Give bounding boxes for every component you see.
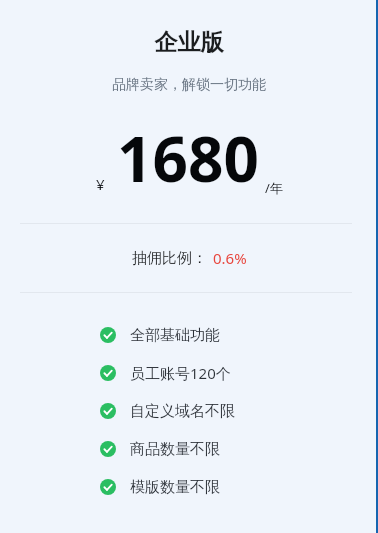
staticText: 商品数量不限: [130, 440, 220, 459]
button[interactable]: 自定义域名不限: [0, 392, 378, 430]
staticText: /年: [265, 179, 283, 197]
button[interactable]: 抽佣比例：: [0, 224, 378, 292]
button[interactable]: 模版数量不限: [0, 468, 378, 506]
staticText: 自定义域名不限: [130, 402, 235, 421]
staticText: ¥: [96, 174, 105, 194]
staticText: 员工账号120个: [130, 363, 231, 383]
staticText: 模版数量不限: [130, 478, 220, 497]
staticText: 抽佣比例：: [132, 249, 207, 268]
staticText: 全部基础功能: [130, 326, 220, 345]
button[interactable]: 全部基础功能: [0, 316, 378, 354]
staticText: 1680: [117, 116, 259, 200]
staticText: 0.6%: [213, 248, 247, 268]
staticText: 品牌卖家，解锁一切功能: [0, 76, 378, 94]
button[interactable]: 员工账号120个: [0, 354, 378, 392]
button[interactable]: 商品数量不限: [0, 430, 378, 468]
staticText: 企业版: [0, 28, 378, 57]
